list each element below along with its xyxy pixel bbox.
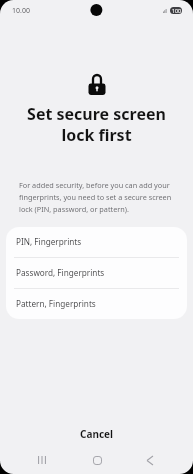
button[interactable]: Home xyxy=(82,448,112,472)
staticText: For added security, before you can add y… xyxy=(19,180,181,214)
button[interactable]: PIN, Fingerprints xyxy=(6,227,187,257)
button[interactable]: Pattern, Fingerprints xyxy=(6,289,187,319)
button[interactable]: Cancel xyxy=(0,421,193,447)
staticText: Cancel xyxy=(80,427,114,441)
button[interactable]: Password, Fingerprints xyxy=(6,258,187,288)
staticText: PIN, Fingerprints xyxy=(16,236,82,247)
button[interactable]: Recent apps xyxy=(27,448,57,472)
staticText: Set secure screen lock first xyxy=(0,103,193,146)
staticText: Pattern, Fingerprints xyxy=(16,298,96,309)
button[interactable]: Back xyxy=(135,448,165,472)
staticText: 100 xyxy=(172,7,181,14)
staticText: Password, Fingerprints xyxy=(16,267,105,278)
staticText: 10.00 xyxy=(12,6,30,16)
